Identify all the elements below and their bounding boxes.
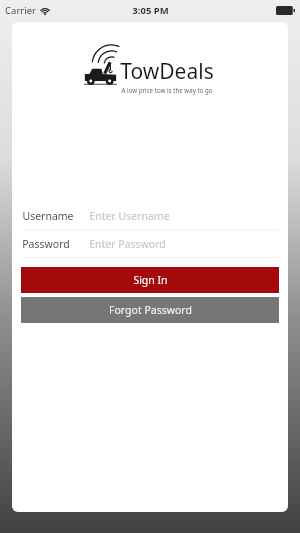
staticText: Sign In — [133, 273, 168, 287]
button[interactable]: Sign In — [21, 267, 279, 293]
button[interactable]: Forgot Password — [21, 297, 279, 323]
staticText: TowDeals — [120, 57, 214, 86]
staticText: 3:05 PM — [132, 4, 169, 17]
staticText: A low price tow is the way to go — [121, 86, 213, 94]
button[interactable]: Password — [12, 230, 288, 257]
staticText: Password — [22, 237, 70, 251]
staticText: Forgot Password — [109, 303, 192, 317]
button[interactable]: Username — [12, 202, 288, 229]
staticText: Enter Password — [89, 237, 166, 251]
staticText: Username — [22, 209, 74, 223]
staticText: Enter Username — [89, 209, 170, 223]
staticText: Carrier — [5, 4, 36, 17]
